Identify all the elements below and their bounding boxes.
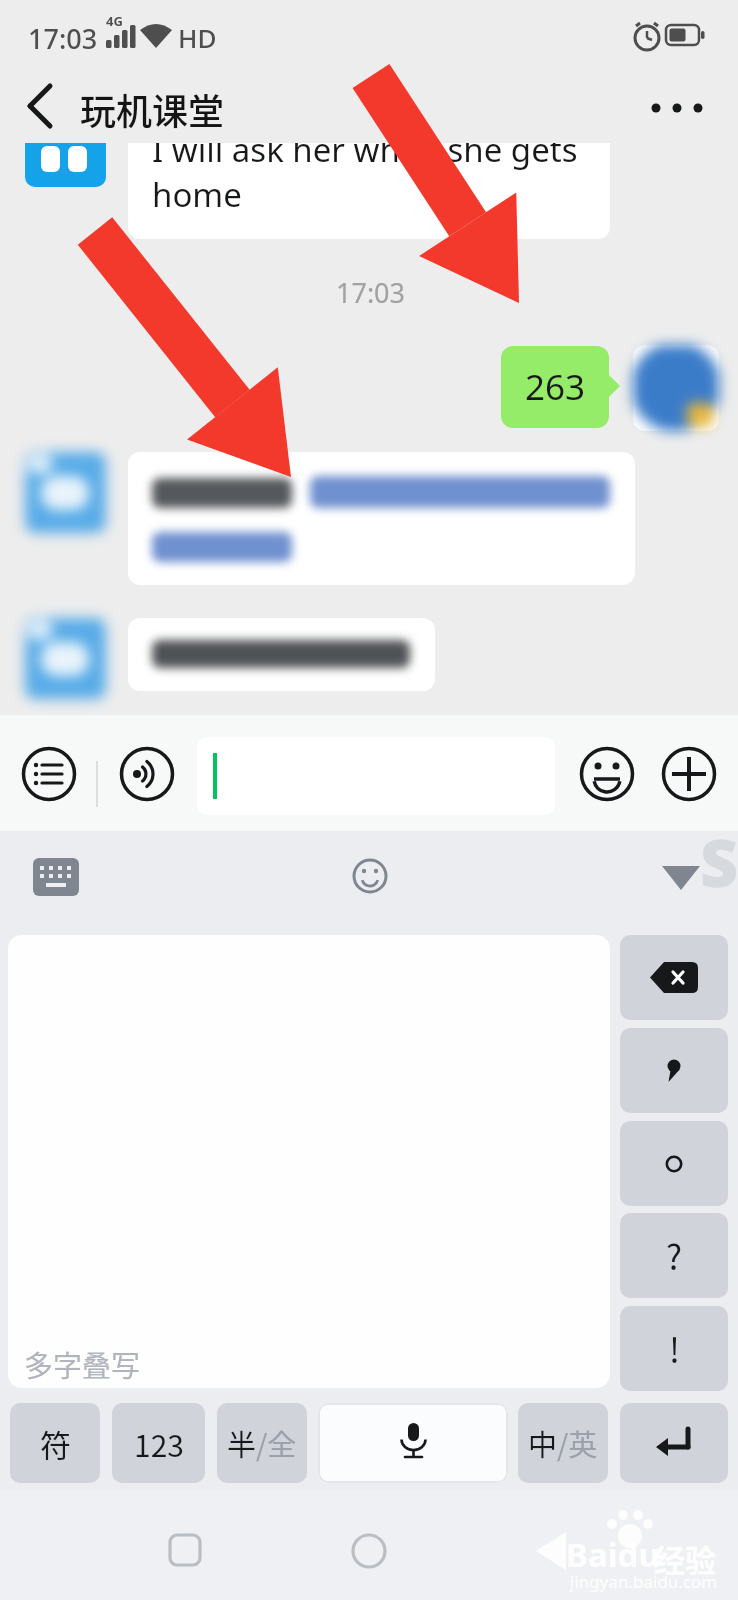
button[interactable]: 多字叠写 xyxy=(8,935,610,1388)
staticText: 17:03 xyxy=(336,274,406,311)
button[interactable] xyxy=(170,1535,200,1565)
button[interactable] xyxy=(318,1403,508,1483)
button[interactable]: ! xyxy=(620,1306,728,1391)
staticText: 玩机课堂 xyxy=(80,83,225,135)
button[interactable] xyxy=(620,1403,728,1483)
button[interactable]: ? xyxy=(620,1213,728,1298)
staticText: 中/英 xyxy=(528,1422,598,1464)
staticText: S xyxy=(700,816,738,906)
button[interactable]: 263 xyxy=(501,346,609,428)
button[interactable] xyxy=(662,747,716,801)
staticText: 多字叠写 xyxy=(24,1343,141,1385)
staticText: 123 xyxy=(134,1422,184,1465)
button[interactable] xyxy=(22,747,76,801)
staticText: ! xyxy=(669,1324,680,1373)
staticText: ? xyxy=(666,1231,683,1280)
button[interactable] xyxy=(536,1532,568,1570)
staticText: 4G xyxy=(106,12,123,30)
staticText: Baidu xyxy=(566,1532,660,1577)
button[interactable]: 半/全 xyxy=(217,1403,307,1483)
staticText: I will ask her when she gets xyxy=(152,143,578,172)
staticText: 263 xyxy=(525,363,586,411)
button[interactable]: 符 xyxy=(10,1403,100,1483)
staticText: 半/全 xyxy=(227,1422,297,1464)
button[interactable] xyxy=(580,747,634,801)
button[interactable] xyxy=(120,747,174,801)
button[interactable] xyxy=(33,858,79,896)
button[interactable] xyxy=(620,1121,728,1206)
button[interactable]: 123 xyxy=(112,1403,205,1483)
button[interactable]: I will ask her when she gets xyxy=(128,143,610,239)
staticText: 经验 xyxy=(654,1536,716,1581)
button[interactable] xyxy=(24,84,58,128)
staticText: HD xyxy=(178,20,217,55)
button[interactable] xyxy=(352,858,388,894)
staticText: 17:03 xyxy=(28,20,98,57)
button[interactable] xyxy=(197,737,555,815)
button[interactable]: 中/英 xyxy=(518,1403,608,1483)
button[interactable] xyxy=(352,1534,386,1568)
button[interactable] xyxy=(662,864,700,890)
staticText: home xyxy=(152,172,242,217)
button[interactable] xyxy=(650,98,706,118)
button[interactable] xyxy=(620,1028,728,1113)
staticText: 符 xyxy=(40,1421,71,1466)
staticText: jingyan.baidu.com xyxy=(570,1570,718,1593)
button[interactable] xyxy=(128,452,635,585)
button[interactable] xyxy=(128,618,435,691)
button[interactable] xyxy=(620,935,728,1020)
